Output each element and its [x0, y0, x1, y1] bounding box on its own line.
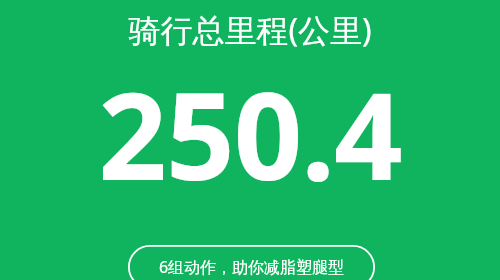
button[interactable]: 6组动作，助你减脂塑腿型: [128, 245, 375, 280]
staticText: 250.4: [0, 52, 500, 215]
staticText: 骑行总里程(公里): [0, 8, 500, 52]
staticText: 6组动作，助你减脂塑腿型: [138, 256, 365, 278]
